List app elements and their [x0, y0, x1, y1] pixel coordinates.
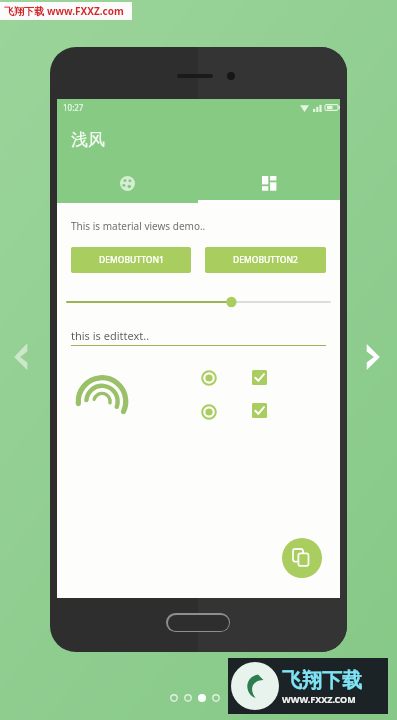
- button[interactable]: Next: [360, 340, 386, 374]
- button[interactable]: Theme tab: [57, 163, 198, 203]
- staticText: DEMOBUTTON2: [233, 254, 298, 266]
- button[interactable]: Previous: [8, 340, 34, 374]
- staticText: WWW.FXXZ.COM: [282, 693, 356, 705]
- button[interactable]: Copy: [282, 538, 322, 578]
- staticText: 飞翔下载: [4, 5, 44, 18]
- staticText: 浅风: [71, 129, 105, 150]
- staticText: www.FXXZ.com: [47, 4, 124, 18]
- button[interactable]: Home: [166, 613, 230, 632]
- staticText: DEMOBUTTON1: [99, 254, 164, 266]
- button[interactable]: [67, 293, 330, 311]
- button[interactable]: DEMOBUTTON1: [71, 247, 191, 273]
- button[interactable]: Widgets tab: [198, 163, 340, 203]
- button[interactable]: this is edittext..: [71, 325, 326, 345]
- staticText: 10:27: [63, 102, 84, 113]
- staticText: This is material views demo..: [71, 219, 206, 233]
- staticText: 飞翔下载: [282, 668, 362, 693]
- staticText: this is edittext..: [71, 328, 150, 343]
- button[interactable]: DEMOBUTTON2: [205, 247, 326, 273]
